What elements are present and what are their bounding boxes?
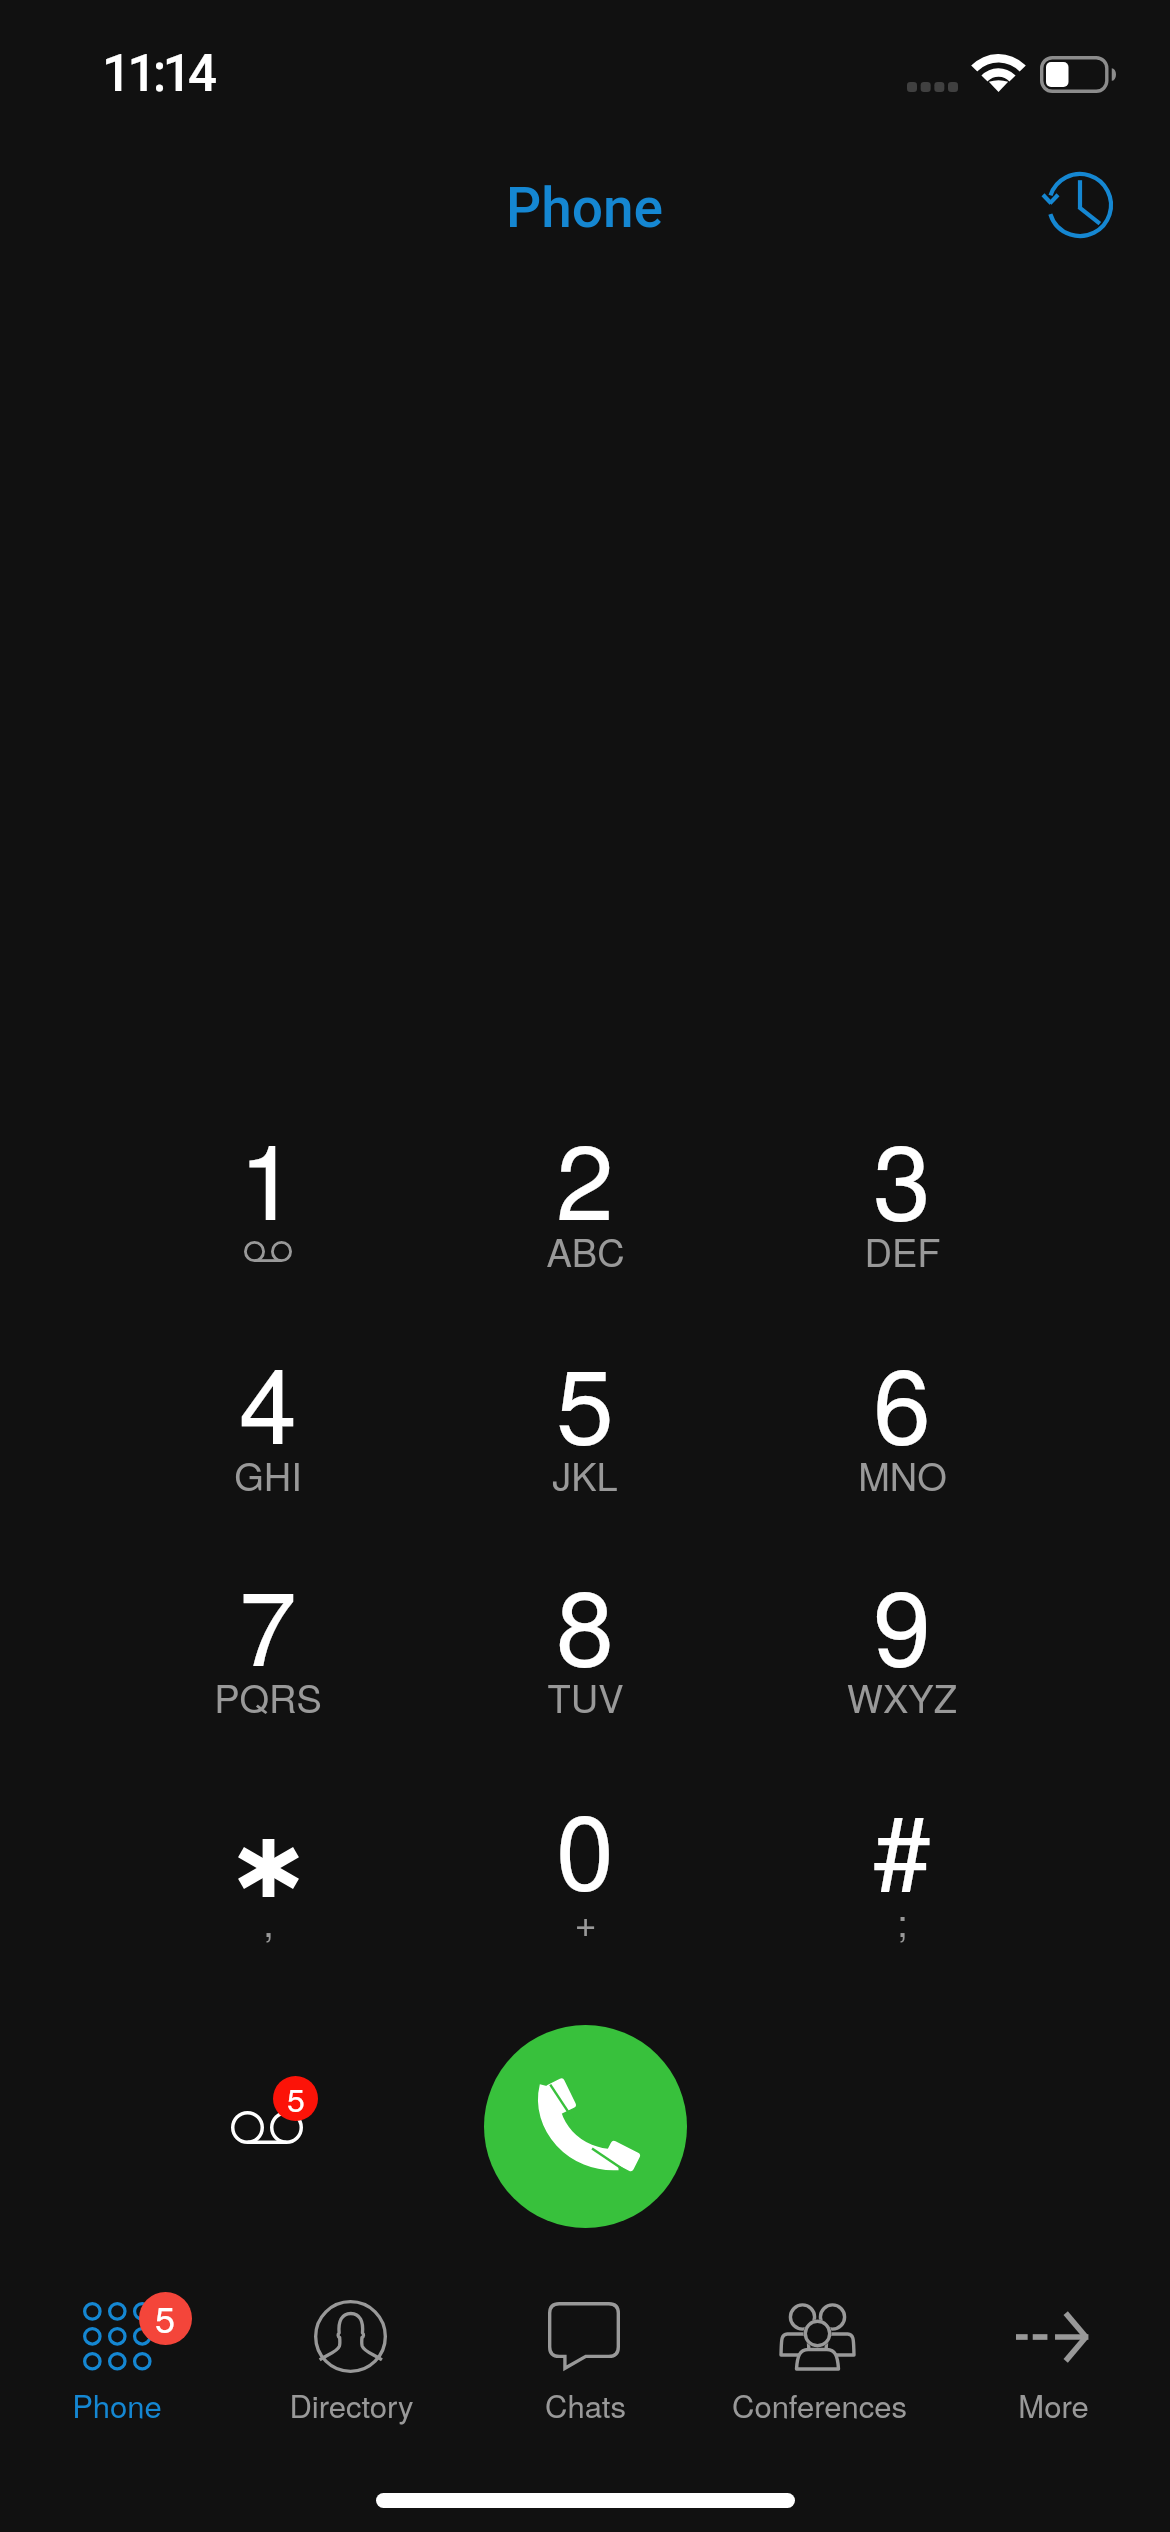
staticText: 5 (556, 1325, 614, 1474)
button[interactable]: 2 (477, 1101, 693, 1301)
staticText: Directory (289, 2382, 414, 2426)
staticText: 5 (155, 2292, 176, 2344)
staticText: 5 (287, 2076, 305, 2120)
button[interactable]: More (936, 2280, 1170, 2430)
staticText: 6 (873, 1325, 931, 1474)
staticText: 3 (873, 1101, 931, 1250)
button[interactable]: 0 (477, 1771, 693, 1971)
staticText: DEF (864, 1223, 941, 1277)
staticText: More (1018, 2382, 1089, 2426)
button[interactable]: Directory (234, 2280, 468, 2430)
button[interactable]: Conferences (702, 2280, 936, 2430)
button[interactable]: Voicemail (200, 2060, 340, 2190)
button[interactable]: 9 (794, 1547, 1010, 1747)
staticText: 11:14 (102, 44, 214, 104)
button[interactable] (160, 1771, 376, 1971)
staticText: ABC (546, 1223, 625, 1277)
staticText: , (263, 1893, 274, 1947)
button[interactable]: 4 (160, 1325, 376, 1525)
button[interactable]: 6 (794, 1325, 1010, 1525)
staticText: 7 (239, 1547, 297, 1696)
staticText: MNO (858, 1447, 947, 1501)
staticText: GHI (234, 1447, 302, 1501)
button[interactable]: Call (484, 2025, 687, 2228)
staticText: WXYZ (847, 1669, 957, 1723)
button[interactable]: 5 (0, 2280, 234, 2430)
staticText: PQRS (214, 1669, 322, 1723)
staticText: Phone (506, 176, 664, 240)
button[interactable]: # (794, 1771, 1010, 1971)
staticText: 1 (239, 1101, 297, 1250)
button[interactable]: 3 (794, 1101, 1010, 1301)
button[interactable]: 5 (477, 1325, 693, 1525)
staticText: Chats (545, 2382, 626, 2426)
staticText: + (574, 1893, 597, 1947)
staticText: 9 (873, 1547, 931, 1696)
staticText: 4 (239, 1325, 297, 1474)
button[interactable]: 7 (160, 1547, 376, 1747)
staticText: Phone (72, 2382, 162, 2426)
button[interactable]: 1 (160, 1101, 376, 1301)
staticText: TUV (547, 1669, 624, 1723)
staticText: 2 (556, 1101, 614, 1250)
button[interactable]: 8 (477, 1547, 693, 1747)
staticText: Conferences (732, 2382, 907, 2426)
button[interactable]: Chats (468, 2280, 702, 2430)
staticText: 0 (556, 1771, 614, 1920)
staticText: JKL (552, 1447, 618, 1501)
staticText: ; (897, 1893, 908, 1947)
staticText: 8 (556, 1547, 614, 1696)
staticText: # (873, 1771, 931, 1920)
button[interactable]: Recents (1030, 155, 1130, 255)
